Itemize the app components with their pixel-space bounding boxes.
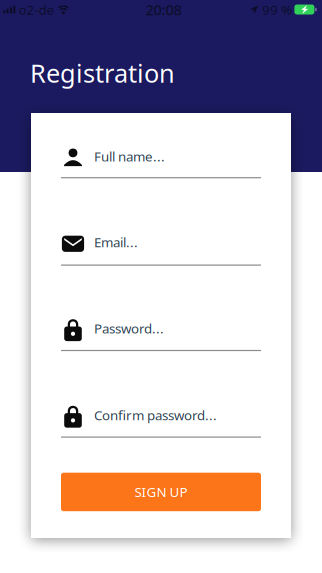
staticText: Password...: [94, 320, 164, 337]
staticText: SIGN UP: [134, 483, 187, 501]
button[interactable]: SIGN UP: [61, 473, 261, 511]
staticText: Full name...: [94, 147, 165, 165]
staticText: o2-de: [15, 1, 54, 18]
button[interactable]: Full name...: [61, 148, 261, 178]
button[interactable]: Email...: [61, 236, 261, 266]
button[interactable]: Confirm password...: [61, 402, 261, 438]
staticText: Email...: [94, 233, 138, 251]
staticText: 99 %: [259, 1, 292, 18]
button[interactable]: Password...: [61, 315, 261, 351]
staticText: Confirm password...: [94, 406, 217, 424]
staticText: Registration: [30, 56, 175, 90]
staticText: 20:08: [145, 0, 181, 19]
